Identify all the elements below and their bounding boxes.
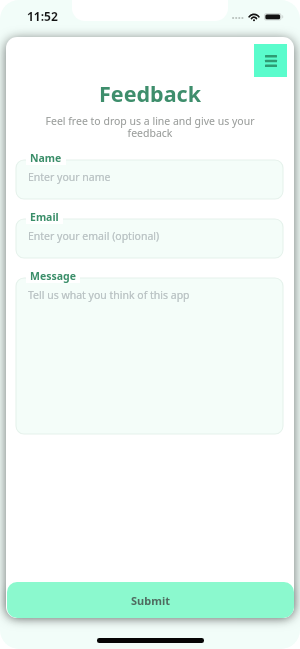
staticText: Tell us what you think of this app <box>28 288 190 302</box>
staticText: 11:52 <box>27 8 58 24</box>
button[interactable]: Submit <box>7 582 294 618</box>
staticText: Email <box>30 210 59 224</box>
staticText: Submit <box>131 593 170 608</box>
staticText: Name <box>30 151 62 165</box>
staticText: Feel free to drop us a line and give us … <box>36 114 264 140</box>
staticText: Enter your email (optional) <box>28 229 160 243</box>
staticText: Feedback <box>6 79 294 108</box>
staticText: Enter your name <box>28 170 111 184</box>
button[interactable]: Menu <box>254 44 287 77</box>
staticText: Message <box>30 269 76 283</box>
